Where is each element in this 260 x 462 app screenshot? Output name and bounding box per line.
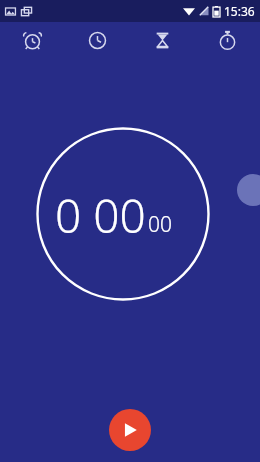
button[interactable]: Timer (130, 22, 195, 58)
button[interactable]: Lap (237, 174, 260, 206)
staticText: 00 (148, 210, 172, 239)
button[interactable]: Start (109, 409, 151, 451)
button[interactable]: Stopwatch (195, 22, 260, 58)
button[interactable]: Alarm (0, 22, 65, 58)
staticText: 0 00 (55, 184, 146, 244)
button[interactable]: Clock (65, 22, 130, 58)
staticText: 15:36 (224, 3, 255, 19)
